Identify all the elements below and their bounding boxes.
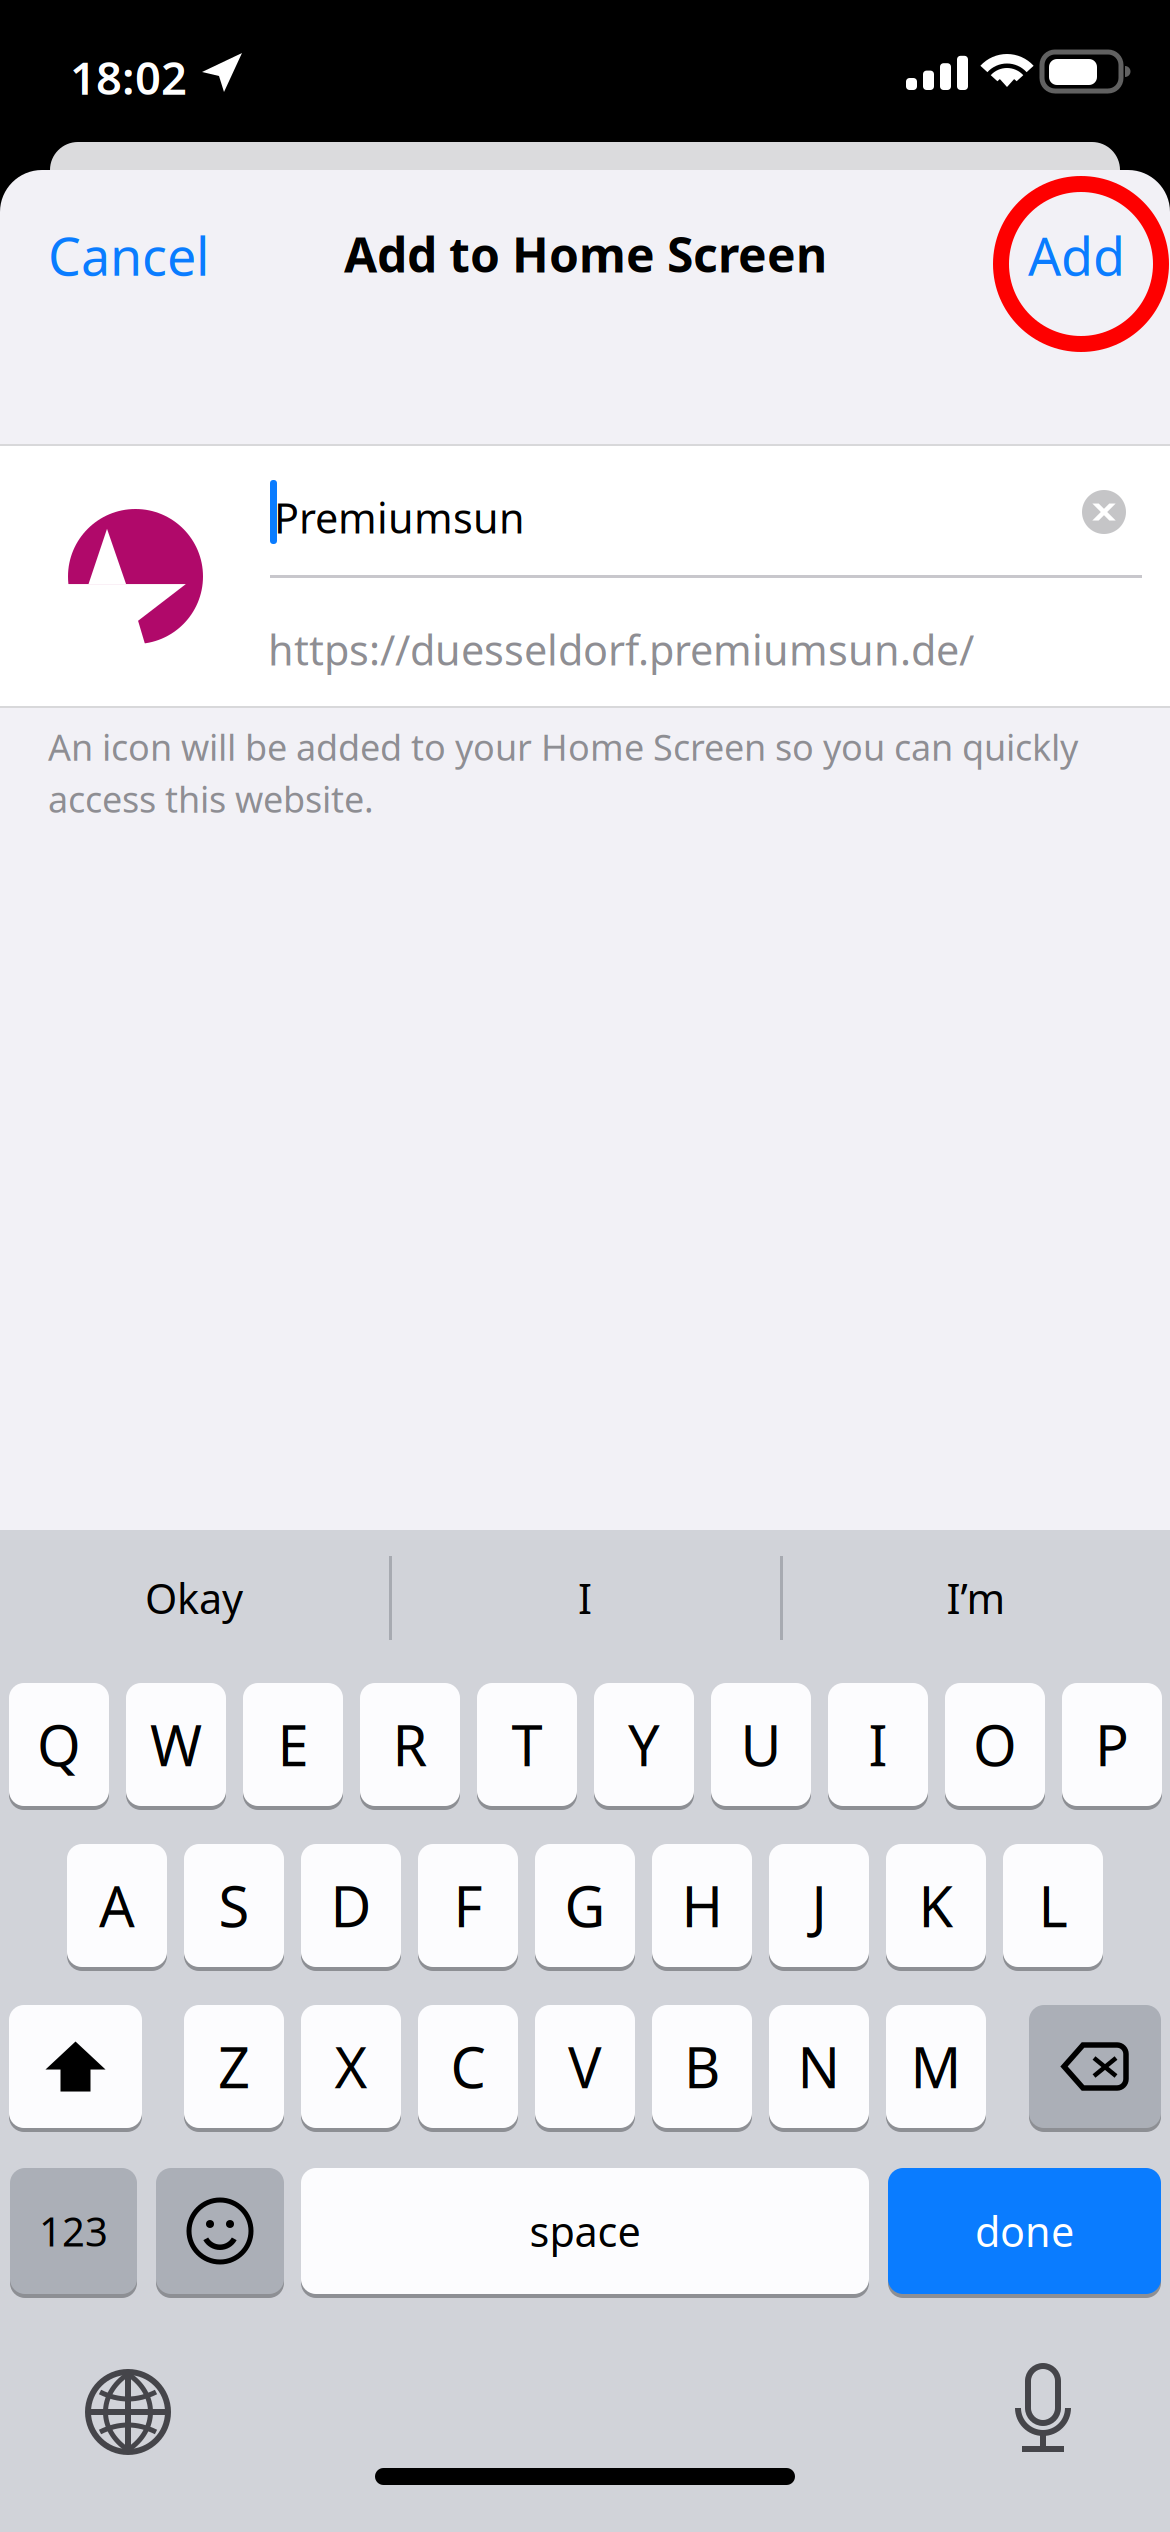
staticText: M [910,2029,961,2104]
button[interactable]: Clear text [1058,466,1150,558]
staticText: Premiumsun [274,490,525,545]
button[interactable]: Y [594,1681,694,1808]
staticText: V [568,2029,602,2104]
staticText: I [868,1707,887,1782]
staticText: done [975,2204,1074,2258]
button[interactable]: C [418,2003,518,2130]
staticText: 18:02 [70,47,187,107]
button[interactable]: Switch keyboard [60,2344,196,2480]
staticText: Y [628,1707,660,1782]
staticText: I’m [946,1571,1005,1625]
button[interactable]: A [67,1842,167,1969]
staticText: D [330,1868,371,1943]
staticText: An icon will be added to your Home Scree… [48,723,1078,823]
button[interactable] [156,2166,284,2296]
staticText: B [684,2029,720,2104]
button[interactable]: S [184,1842,284,1969]
staticText: H [681,1868,722,1943]
staticText: Add to Home Screen [344,222,827,286]
button[interactable]: E [243,1681,343,1808]
button[interactable]: K [886,1842,986,1969]
staticText: F [453,1868,482,1943]
staticText: L [1038,1868,1067,1943]
button[interactable]: R [360,1681,460,1808]
button[interactable]: P [1062,1681,1162,1808]
staticText: K [918,1868,953,1943]
button[interactable] [9,2003,142,2130]
button[interactable]: done [888,2166,1161,2296]
button[interactable]: space [301,2166,869,2296]
button[interactable]: V [535,2003,635,2130]
button[interactable]: M [886,2003,986,2130]
button[interactable]: F [418,1842,518,1969]
staticText: Q [37,1707,81,1782]
staticText: 123 [39,2204,108,2257]
button[interactable]: X [301,2003,401,2130]
button[interactable]: Z [184,2003,284,2130]
staticText: W [150,1707,202,1782]
staticText: Z [218,2029,250,2104]
staticText: Okay [145,1571,243,1625]
staticText: T [511,1707,542,1782]
button[interactable]: Add [1004,195,1149,316]
button[interactable]: O [945,1681,1045,1808]
button[interactable]: I’m [782,1530,1170,1666]
button[interactable]: J [769,1842,869,1969]
staticText: X [334,2029,367,2104]
button[interactable]: H [652,1842,752,1969]
staticText: S [218,1868,249,1943]
staticText: A [99,1868,135,1943]
staticText: N [797,2029,840,2104]
button[interactable]: B [652,2003,752,2130]
staticText: E [277,1707,308,1782]
button[interactable]: Okay [0,1530,388,1666]
button[interactable]: N [769,2003,869,2130]
button[interactable]: Cancel [24,195,233,316]
staticText: O [973,1707,1017,1782]
button[interactable]: L [1003,1842,1103,1969]
staticText: J [811,1868,826,1943]
staticText: I [578,1571,592,1625]
button[interactable]: G [535,1842,635,1969]
staticText: https://duesseldorf.premiumsun.de/ [268,622,974,677]
button[interactable]: D [301,1842,401,1969]
staticText: Add [1028,221,1125,290]
button[interactable]: I [391,1530,779,1666]
button[interactable]: 123 [10,2166,137,2296]
button[interactable]: I [828,1681,928,1808]
staticText: space [529,2204,640,2258]
button[interactable]: Q [9,1681,109,1808]
button[interactable]: U [711,1681,811,1808]
staticText: U [740,1707,781,1782]
staticText: Cancel [48,221,209,290]
button[interactable] [1029,2003,1161,2130]
staticText: P [1095,1707,1129,1782]
button[interactable]: Dictate [987,2338,1099,2480]
staticText: C [450,2029,485,2104]
staticText: G [564,1868,605,1943]
button[interactable]: T [477,1681,577,1808]
staticText: R [392,1707,427,1782]
button[interactable]: W [126,1681,226,1808]
